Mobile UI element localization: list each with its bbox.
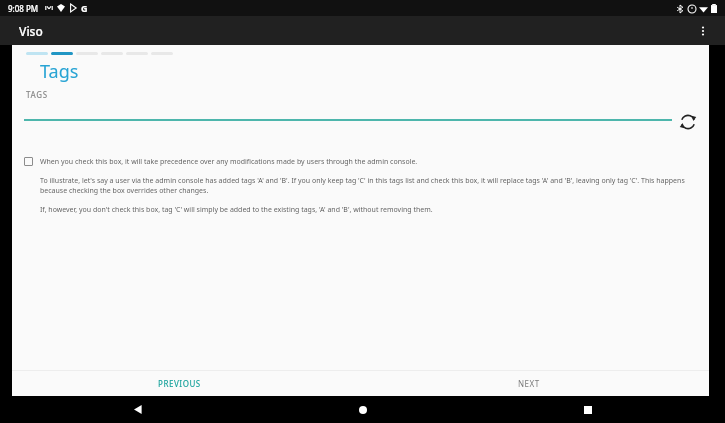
staticText: When you check this box, it will take pr…	[40, 157, 418, 167]
button[interactable]: PREVIOUS	[152, 374, 207, 393]
button[interactable]: When you check this box, it will take pr…	[24, 157, 709, 167]
button[interactable]: Refresh tags	[673, 107, 703, 137]
button[interactable]: Recent apps	[573, 396, 603, 423]
staticText: To illustrate, let's say a user via the …	[40, 176, 685, 186]
staticText: 9:08 PM	[8, 3, 39, 14]
button[interactable]: More options	[691, 19, 715, 43]
button[interactable]: Home	[348, 396, 378, 423]
staticText: because checking the box overrides other…	[40, 186, 209, 196]
staticText: G	[81, 2, 88, 14]
button[interactable]: Back	[123, 396, 153, 423]
staticText: NEXT	[518, 378, 540, 389]
staticText: If, however, you don't check this box, t…	[40, 205, 433, 215]
staticText: TAGS	[26, 89, 48, 100]
staticText: PREVIOUS	[158, 378, 201, 389]
button[interactable]: NEXT	[512, 374, 546, 393]
staticText: Tags	[40, 59, 79, 84]
staticText: Viso	[19, 23, 43, 39]
